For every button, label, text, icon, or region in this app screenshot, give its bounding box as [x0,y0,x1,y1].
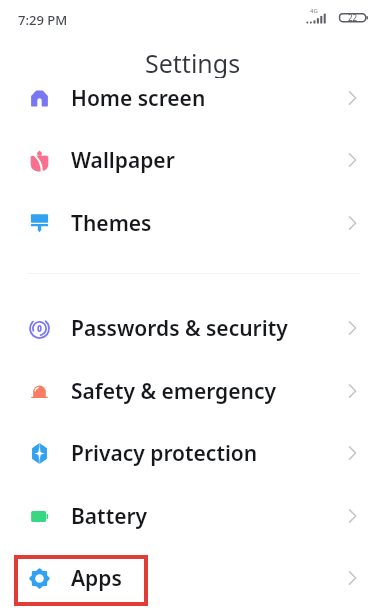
staticText: Battery [71,502,148,531]
staticText: Passwords & security [71,314,288,343]
staticText: Apps [71,564,122,593]
button[interactable]: Themes [0,192,385,254]
button[interactable]: Privacy protection [0,422,385,484]
staticText: Settings [145,46,241,78]
button[interactable]: Apps [0,547,385,609]
button[interactable]: Safety & emergency [0,360,385,422]
staticText: 22 [348,12,358,23]
staticText: Wallpaper [71,146,175,175]
staticText: 7:29 PM [18,11,68,29]
button[interactable]: Home screen [0,67,385,129]
staticText: Privacy protection [71,439,258,468]
button[interactable]: Passwords & security [0,297,385,359]
staticText: Safety & emergency [71,377,276,406]
staticText: 4G [310,7,318,15]
button[interactable]: Wallpaper [0,129,385,191]
staticText: Home screen [71,84,206,113]
button[interactable]: Battery [0,485,385,547]
staticText: Themes [71,209,152,238]
